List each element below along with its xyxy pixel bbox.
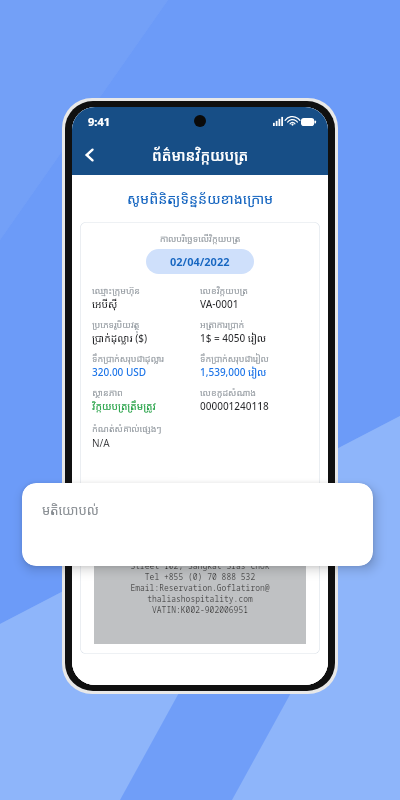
staticText: លេខវិក្កយបត្រ: [200, 284, 248, 296]
staticText: 320.00 USD: [92, 365, 147, 379]
staticText: 9:41: [88, 114, 110, 129]
staticText: ស្ថានភាព: [92, 386, 123, 398]
staticText: ព័ត៌មានវិក្កយបត្រ: [152, 145, 249, 165]
button[interactable]: Back: [72, 137, 108, 173]
staticText: ទឹកប្រាក់សរុបជារៀល: [200, 352, 269, 364]
staticText: 02/04/2022: [170, 254, 230, 269]
staticText: 000001240118: [200, 399, 269, 413]
button[interactable]: កាលបរិច្ឆេទលើវិក្កយបត្រ: [80, 222, 320, 654]
staticText: N/A: [92, 436, 110, 450]
staticText: 1$ = 4050 រៀល: [200, 331, 267, 345]
staticText: VATIN:K002-902006951: [94, 604, 306, 615]
staticText: រូបយបត្រ: [92, 498, 123, 510]
staticText: Tel +855 (0) 70 888 532: [94, 571, 306, 582]
button[interactable]: មតិយោបល់: [22, 483, 373, 566]
staticText: លេខកូដសំណាង: [200, 386, 256, 398]
staticText: Street 102, Sangkat Sras Chok: [94, 560, 306, 571]
staticText: ទឹកប្រាក់សរុបជាដុល្លារ: [92, 352, 164, 364]
staticText: ប្រភេទរូបិយវត្ថុ: [92, 318, 140, 330]
staticText: មតិយោបល់: [42, 501, 99, 519]
staticText: Email:Reservation.Goflatiron@: [94, 582, 306, 593]
staticText: សូមពិនិត្យទិន្នន័យខាងក្រោម: [72, 189, 328, 208]
button[interactable]: 02/04/2022: [146, 249, 254, 274]
staticText: កំណត់សំគាល់ផ្សេងៗ: [92, 422, 162, 434]
staticText: កាលបរិច្ឆេទលើវិក្កយបត្រ: [92, 232, 308, 244]
staticText: thaliashospitality.com: [94, 593, 306, 604]
staticText: វិក្កយបត្រត្រឹមត្រូវ: [92, 399, 156, 413]
staticText: ប្រាក់ដុល្លារ ($): [92, 331, 148, 345]
staticText: អេបីស៊ី: [92, 297, 118, 311]
staticText: ឈ្មោះក្រុមហ៊ុន: [92, 284, 141, 296]
staticText: អត្រាការប្រាក់: [200, 318, 245, 330]
staticText: 1,539,000 រៀល: [200, 365, 267, 379]
staticText: VA-0001: [200, 297, 239, 311]
